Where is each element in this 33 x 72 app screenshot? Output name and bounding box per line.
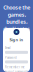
staticText: Choose the games, bundles, duplicates an… [3,4,30,61]
staticText: Password [5,56,17,59]
staticText: Remember me [5,65,25,69]
staticText: Forgot password? [5,70,28,72]
staticText: Email [5,46,11,50]
staticText: Sign in [9,37,23,42]
